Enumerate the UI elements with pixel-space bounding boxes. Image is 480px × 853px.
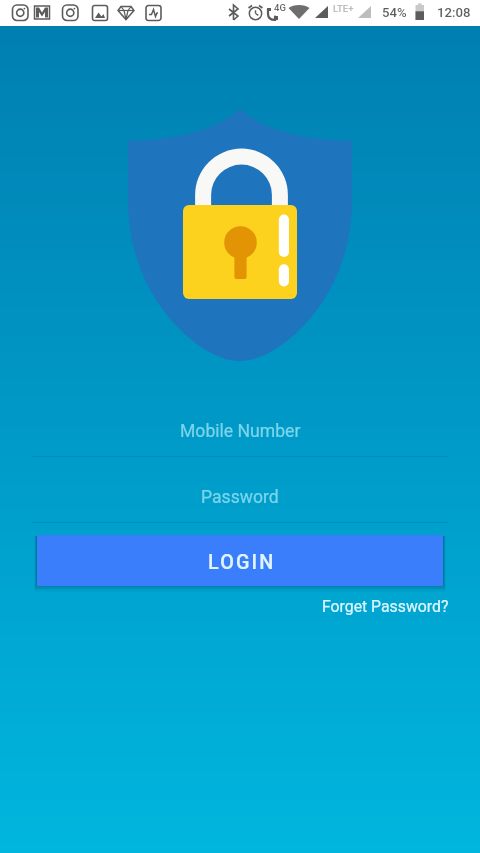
staticText: Mobile Number (180, 421, 301, 442)
staticText: LOGIN (208, 551, 276, 574)
staticText: 54% (382, 5, 407, 20)
staticText: LTE+ (333, 3, 354, 14)
staticText: 4G (274, 2, 286, 13)
button[interactable]: LOGIN (37, 535, 443, 586)
button[interactable]: Mobile Number (32, 406, 448, 456)
button[interactable]: Forget Password? (300, 592, 449, 620)
button[interactable]: Password (32, 472, 448, 522)
staticText: 12:08 (437, 5, 471, 20)
staticText: Forget Password? (322, 597, 449, 616)
staticText: Password (201, 487, 279, 508)
